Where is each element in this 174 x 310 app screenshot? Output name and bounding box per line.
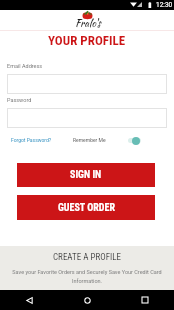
button[interactable] [7, 74, 167, 94]
staticText: Forgot Password? [11, 137, 52, 143]
staticText: Remember Me [73, 137, 106, 143]
staticText: Password [7, 97, 32, 103]
button[interactable] [7, 108, 167, 128]
staticText: Fralo's [75, 16, 101, 31]
button[interactable]: Remember Me [126, 134, 148, 147]
staticText: Email Address [7, 63, 43, 69]
button[interactable]: Forgot Password? [8, 135, 55, 145]
button[interactable]: Home [76, 290, 98, 310]
staticText: GUEST ORDER [58, 202, 115, 214]
button[interactable]: Recent apps [134, 290, 156, 310]
staticText: SIGN IN [70, 169, 102, 181]
staticText: YOUR PROFILE [48, 33, 126, 48]
staticText: Save your Favorite Orders and Securely S… [6, 269, 168, 284]
staticText: CREATE A PROFILE [53, 252, 121, 263]
button[interactable]: SIGN IN [17, 163, 155, 187]
button[interactable]: GUEST ORDER [17, 195, 155, 220]
button[interactable]: Back [18, 290, 40, 310]
staticText: 12:30 [156, 1, 173, 9]
